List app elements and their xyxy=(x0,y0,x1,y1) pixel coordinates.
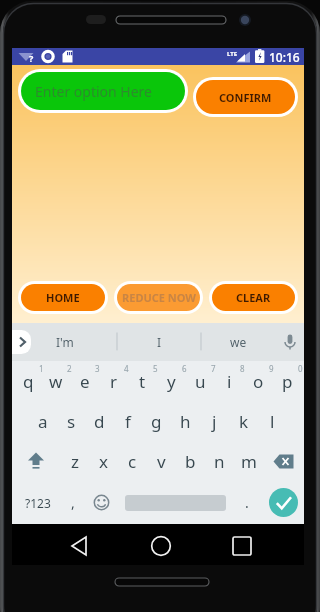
staticText: f xyxy=(125,410,131,433)
staticText: q xyxy=(23,370,34,393)
staticText: h xyxy=(180,410,191,433)
staticText: n xyxy=(214,450,225,473)
button[interactable]: k xyxy=(229,401,258,441)
button[interactable]: CONFIRM xyxy=(196,80,295,114)
staticText: 4 xyxy=(124,363,129,374)
button[interactable]: Backspace xyxy=(263,441,304,482)
staticText: o xyxy=(253,370,264,393)
button[interactable]: HOME xyxy=(21,284,105,311)
button[interactable]: , xyxy=(63,482,83,523)
button[interactable]: Enter option Here xyxy=(21,72,185,110)
staticText: p xyxy=(282,370,293,393)
staticText: g xyxy=(151,410,162,433)
staticText: d xyxy=(94,410,105,433)
staticText: t xyxy=(139,370,146,393)
staticText: 5 xyxy=(153,363,158,374)
button[interactable]: Recents xyxy=(222,524,262,565)
staticText: ?123 xyxy=(25,495,51,511)
staticText: HOME xyxy=(46,290,80,305)
button[interactable]: s xyxy=(57,401,85,441)
button[interactable]: b xyxy=(176,441,205,482)
button[interactable]: e xyxy=(70,361,99,401)
button[interactable]: Emoji xyxy=(83,482,120,523)
button[interactable]: h xyxy=(171,401,200,441)
staticText: ? xyxy=(29,52,34,64)
button[interactable]: t xyxy=(128,361,157,401)
button[interactable]: o xyxy=(244,361,273,401)
button[interactable]: we xyxy=(201,323,276,361)
staticText: v xyxy=(157,450,166,473)
button[interactable]: ?123 xyxy=(12,482,63,523)
button[interactable]: a xyxy=(29,401,57,441)
staticText: x xyxy=(99,450,108,473)
button[interactable]: I xyxy=(117,323,201,361)
button[interactable]: Voice input xyxy=(276,323,304,361)
staticText: e xyxy=(80,370,90,393)
button[interactable]: g xyxy=(142,401,171,441)
staticText: Enter option Here xyxy=(35,82,152,101)
staticText: w xyxy=(49,370,63,393)
button[interactable]: r xyxy=(99,361,128,401)
button[interactable]: I'm xyxy=(12,323,117,361)
button[interactable]: y xyxy=(157,361,186,401)
staticText: a xyxy=(38,410,48,433)
staticText: REDUCE NOW xyxy=(122,290,196,305)
button[interactable]: d xyxy=(85,401,113,441)
staticText: 9 xyxy=(269,363,274,374)
button[interactable]: Shift xyxy=(12,441,60,482)
button[interactable]: j xyxy=(200,401,229,441)
staticText: I xyxy=(157,334,162,350)
staticText: j xyxy=(212,410,217,433)
button[interactable]: v xyxy=(147,441,176,482)
staticText: 10:16 xyxy=(269,49,300,65)
button[interactable]: n xyxy=(205,441,234,482)
staticText: 0 xyxy=(298,363,303,374)
button[interactable]: Done xyxy=(269,488,298,517)
button[interactable]: Home xyxy=(141,524,181,565)
button[interactable]: c xyxy=(118,441,147,482)
button[interactable] xyxy=(120,482,231,523)
button[interactable]: Back xyxy=(60,524,100,565)
staticText: l xyxy=(270,410,275,433)
staticText: k xyxy=(239,410,249,433)
button[interactable]: CLEAR xyxy=(212,284,295,311)
staticText: s xyxy=(67,410,76,433)
staticText: i xyxy=(227,370,232,393)
button[interactable]: i xyxy=(215,361,244,401)
button[interactable]: p xyxy=(273,361,302,401)
staticText: we xyxy=(230,334,247,350)
staticText: , xyxy=(71,493,75,512)
button[interactable]: u xyxy=(186,361,215,401)
button[interactable]: x xyxy=(89,441,118,482)
staticText: . xyxy=(245,493,249,512)
staticText: 8 xyxy=(240,363,245,374)
staticText: 7 xyxy=(211,363,216,374)
staticText: CLEAR xyxy=(236,290,271,305)
staticText: 6 xyxy=(182,363,187,374)
button[interactable]: Expand suggestions xyxy=(12,330,31,354)
staticText: b xyxy=(185,450,196,473)
button[interactable]: l xyxy=(258,401,287,441)
button[interactable]: f xyxy=(113,401,142,441)
staticText: c xyxy=(128,450,137,473)
button[interactable]: m xyxy=(234,441,263,482)
button[interactable]: z xyxy=(60,441,89,482)
button[interactable]: REDUCE NOW xyxy=(117,284,200,311)
staticText: 2 xyxy=(67,363,72,374)
staticText: 3 xyxy=(95,363,100,374)
staticText: m xyxy=(241,450,257,473)
staticText: y xyxy=(167,370,176,393)
button[interactable]: w xyxy=(42,361,70,401)
staticText: CONFIRM xyxy=(219,90,272,105)
staticText: z xyxy=(71,450,79,473)
button[interactable]: . xyxy=(231,482,263,523)
button[interactable]: q xyxy=(14,361,42,401)
staticText: r xyxy=(110,370,118,393)
staticText: LTE xyxy=(227,50,238,58)
staticText: I'm xyxy=(56,334,74,350)
staticText: u xyxy=(195,370,206,393)
staticText: 1 xyxy=(39,363,44,374)
